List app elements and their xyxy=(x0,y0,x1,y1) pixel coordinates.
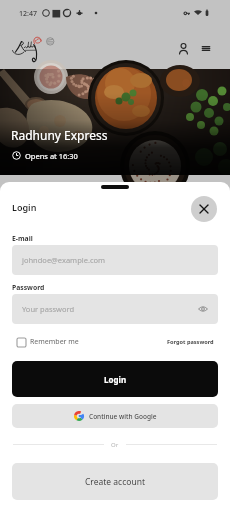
button[interactable]: Menu xyxy=(195,37,217,59)
staticText: Opens at 16:30 xyxy=(25,151,78,161)
staticText: Password xyxy=(12,283,45,292)
staticText: Forgot password xyxy=(167,338,214,346)
staticText: Login xyxy=(104,374,127,385)
staticText: johndoe@example.com xyxy=(22,255,106,265)
button[interactable]: Continue with Google xyxy=(12,404,218,428)
button[interactable]: johndoe@example.com xyxy=(12,245,218,275)
staticText: E-mail xyxy=(12,234,33,243)
button[interactable]: Remember me xyxy=(13,337,79,347)
button[interactable]: Close xyxy=(191,196,217,222)
button[interactable]: Login xyxy=(12,361,218,397)
staticText: Login xyxy=(12,201,37,213)
staticText: Remember me xyxy=(30,337,79,347)
staticText: Create account xyxy=(85,476,145,488)
button[interactable]: Account xyxy=(172,37,194,59)
staticText: Or xyxy=(111,441,119,449)
staticText: Continue with Google xyxy=(89,412,157,421)
button[interactable]: Create account xyxy=(12,463,218,500)
staticText: Radhuny Express xyxy=(11,127,108,143)
staticText: 12:47 xyxy=(19,9,37,19)
button[interactable]: Forgot password xyxy=(167,338,214,346)
button[interactable]: Your password xyxy=(12,294,218,324)
staticText: Your password xyxy=(22,304,75,314)
